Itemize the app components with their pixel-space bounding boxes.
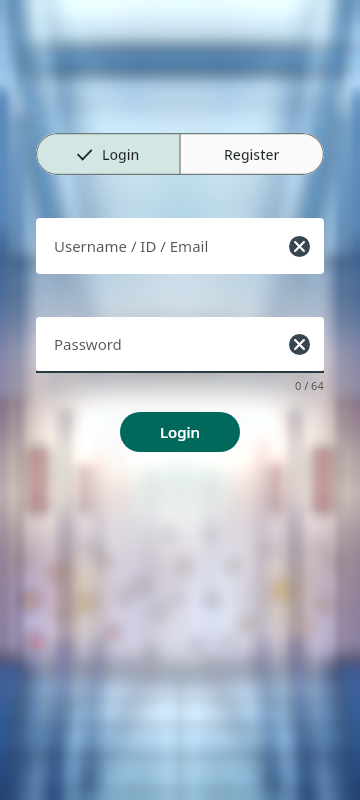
button[interactable]: Login — [36, 133, 180, 175]
button[interactable]: Clear text — [289, 334, 310, 355]
button[interactable]: Register — [180, 133, 324, 175]
staticText: 0 / 64 — [295, 378, 324, 393]
button[interactable]: Login — [120, 412, 240, 452]
staticText: Login — [160, 422, 200, 442]
staticText: Login — [102, 145, 140, 164]
staticText: Register — [224, 145, 280, 164]
button[interactable]: Clear text — [289, 236, 310, 257]
staticText: Password — [54, 334, 289, 354]
button[interactable]: Username / ID / Email — [36, 218, 324, 274]
staticText: Username / ID / Email — [54, 236, 289, 256]
button[interactable]: Password — [36, 317, 324, 371]
